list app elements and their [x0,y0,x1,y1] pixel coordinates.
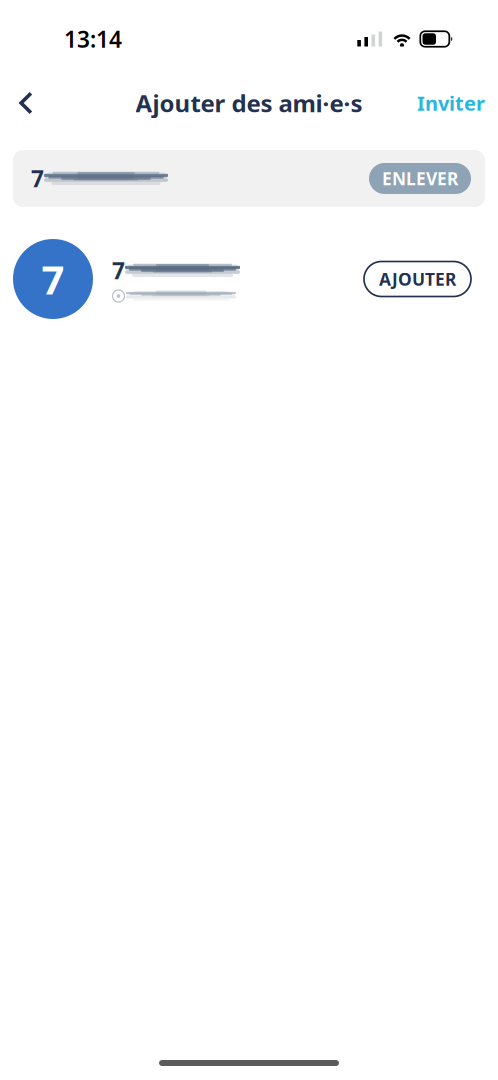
staticText: Inviter [417,90,485,116]
staticText: ENLEVER [382,167,458,190]
staticText: Ajouter des ami·e·s [135,87,362,119]
button[interactable]: ENLEVER [369,163,471,194]
button[interactable]: 7 [13,150,369,207]
button[interactable]: Retour [0,78,52,128]
staticText: 7 [31,163,44,193]
staticText: 7 [112,255,125,285]
staticText: AJOUTER [379,267,456,290]
staticText: 13:14 [64,24,122,54]
staticText: 7 [41,252,64,305]
button[interactable]: AJOUTER [364,261,471,296]
button[interactable]: 7 [0,239,364,319]
button[interactable]: Inviter [417,78,498,128]
